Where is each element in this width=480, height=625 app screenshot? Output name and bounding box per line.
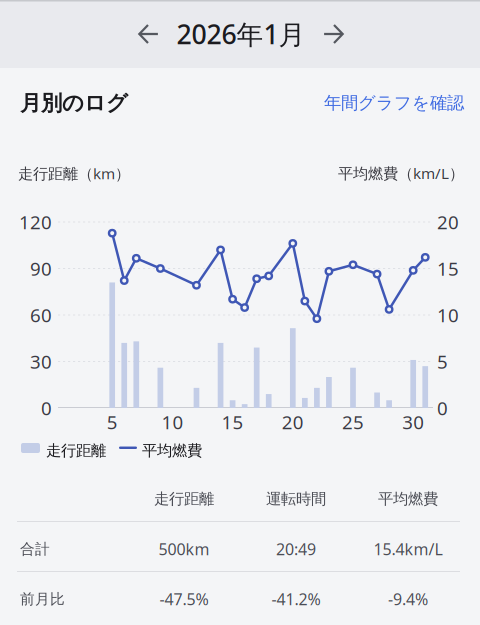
staticText: 25 (342, 410, 364, 434)
staticText: 0 (41, 396, 52, 420)
staticText: 30 (30, 349, 52, 374)
staticText: -9.4% (388, 588, 428, 610)
staticText: 60 (30, 303, 52, 327)
staticText: 合計 (20, 540, 50, 558)
staticText: 平均燃費 (142, 441, 202, 460)
staticText: 走行距離 (46, 441, 106, 460)
staticText: 30 (402, 410, 424, 434)
button[interactable]: Next month (314, 12, 353, 56)
staticText: 15 (222, 410, 244, 434)
staticText: 20 (437, 210, 459, 234)
button[interactable]: Previous month (129, 12, 168, 56)
staticText: 10 (437, 303, 459, 327)
staticText: 運転時間 (266, 489, 326, 509)
staticText: 15.4km/L (373, 538, 442, 560)
staticText: 2026年1月 (176, 16, 305, 52)
staticText: 0 (437, 396, 448, 420)
staticText: 20:49 (276, 538, 316, 560)
staticText: 月別のログ (20, 90, 128, 116)
staticText: 走行距離 (154, 489, 214, 509)
staticText: 20 (282, 410, 304, 434)
staticText: 走行距離（km） (18, 163, 130, 184)
staticText: 年間グラフを確認 (324, 92, 464, 114)
staticText: 10 (161, 410, 183, 434)
button[interactable]: 年間グラフを確認 (322, 92, 464, 114)
staticText: 120 (19, 210, 52, 234)
staticText: -47.5% (159, 588, 208, 610)
staticText: 90 (30, 256, 52, 281)
staticText: 15 (437, 256, 459, 281)
staticText: 平均燃費 (378, 489, 438, 509)
staticText: -41.2% (271, 588, 320, 610)
staticText: 5 (437, 349, 448, 374)
staticText: 前月比 (20, 590, 65, 608)
staticText: 5 (107, 410, 118, 434)
staticText: 平均燃費（km/L） (338, 163, 464, 183)
staticText: 500km (158, 538, 209, 560)
